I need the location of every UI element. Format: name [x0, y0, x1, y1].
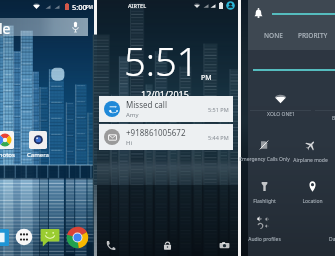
staticText: 5:51	[124, 35, 199, 87]
staticText: Airplane mode	[293, 157, 328, 164]
staticText: Camera	[27, 151, 49, 159]
button[interactable]: Chrome	[66, 226, 89, 249]
button[interactable]: Do not disturb	[253, 8, 264, 19]
staticText: XOLO ONE1	[267, 111, 295, 118]
button[interactable]: Unlock	[162, 240, 173, 251]
button[interactable]: XOLO ONE1	[264, 94, 297, 118]
staticText: 5:44 PM	[208, 134, 229, 141]
button[interactable]: NONE	[264, 31, 283, 40]
button[interactable]: Switch user	[226, 1, 235, 10]
button[interactable]: PRIORITY	[298, 31, 328, 40]
button[interactable]: Phone	[0, 229, 9, 246]
staticText: le	[0, 19, 11, 37]
staticText: 12/01/2015	[141, 88, 189, 100]
staticText: AIRTEL	[128, 2, 147, 9]
staticText: Flashlight	[253, 198, 276, 205]
staticText: Emergency Calls Only	[239, 156, 290, 163]
button[interactable]: Audio profiles	[248, 215, 281, 243]
staticText: PM	[86, 4, 93, 10]
button[interactable]: le	[0, 18, 88, 36]
button[interactable]: B	[332, 115, 335, 122]
button[interactable]: Flashlight	[248, 181, 281, 205]
button[interactable]: Airplane mode	[288, 140, 333, 164]
staticText: PM	[201, 73, 212, 83]
button[interactable]: Camera	[24, 131, 52, 159]
button[interactable]: Messages	[40, 227, 60, 247]
staticText: +918861005672	[126, 127, 186, 138]
button[interactable]: Photos	[0, 131, 19, 159]
button[interactable]: Camera	[219, 240, 230, 251]
staticText: 5:51 PM	[208, 106, 229, 113]
button[interactable]: Emergency Calls Only	[238, 140, 290, 163]
button[interactable]: Data	[329, 236, 335, 243]
staticText: Location	[302, 198, 323, 205]
button[interactable]: Phone	[105, 240, 116, 251]
button[interactable]: Location	[294, 181, 330, 205]
staticText: 5:00	[72, 2, 87, 12]
staticText: Hi	[126, 139, 132, 147]
staticText: Audio profiles	[248, 236, 281, 243]
staticText: Photos	[0, 151, 15, 159]
button[interactable]: +918861005672	[104, 124, 229, 150]
staticText: Missed call	[126, 99, 167, 110]
button[interactable]: All apps	[15, 228, 33, 246]
button[interactable]: Missed call	[104, 96, 229, 122]
staticText: Amy	[126, 111, 139, 119]
